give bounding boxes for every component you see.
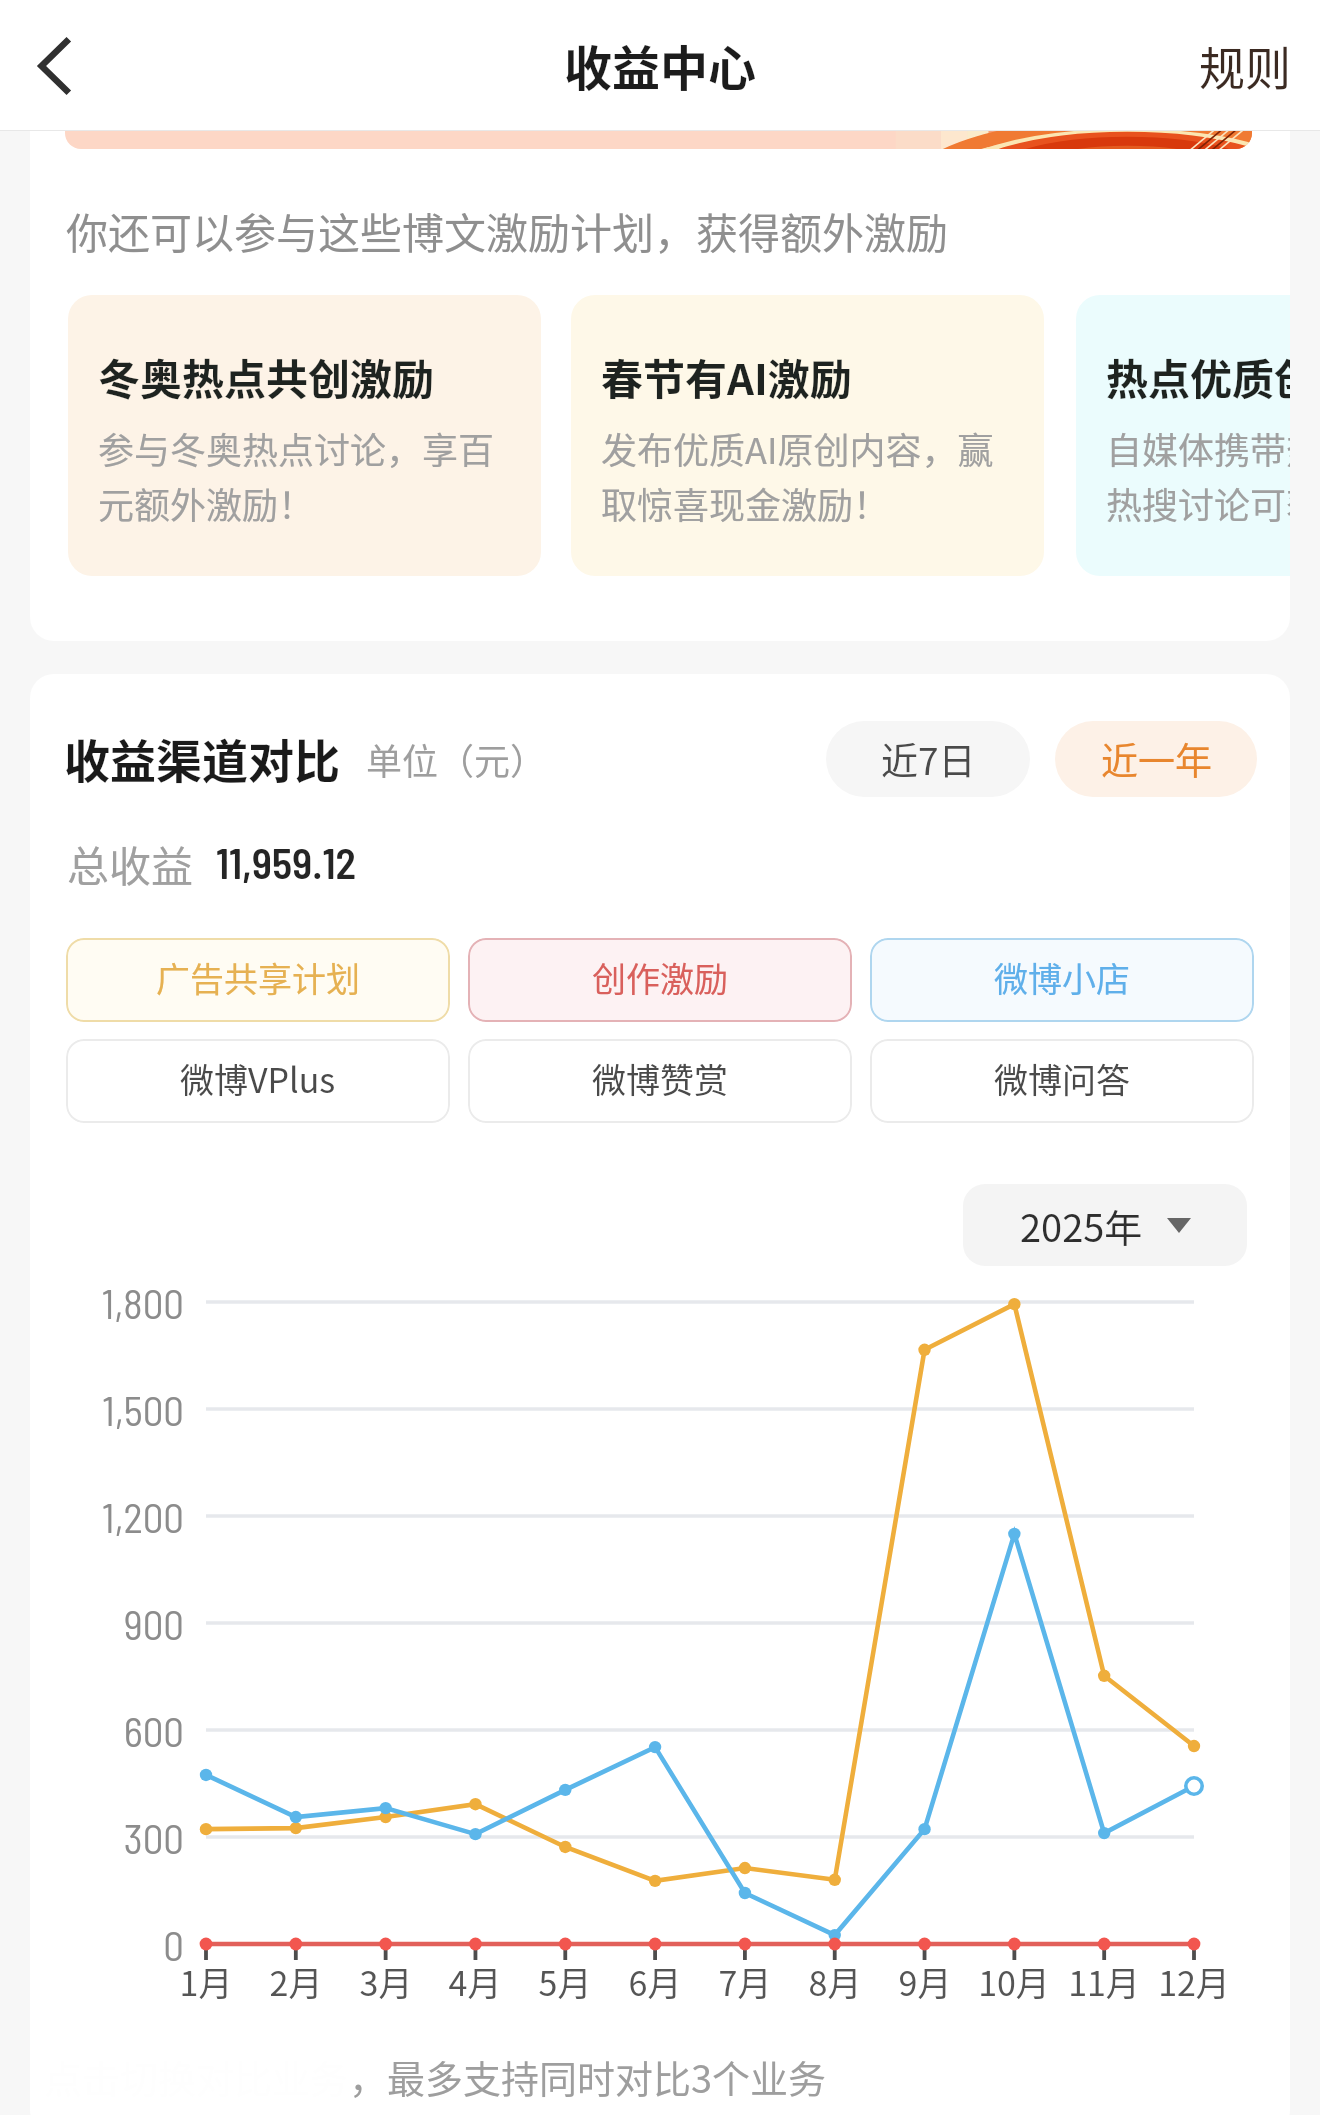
staticText: 300 — [30, 1813, 184, 1862]
staticText: 1月 — [146, 1957, 266, 2006]
staticText: 微博小店 — [994, 953, 1130, 1002]
staticText: 近一年 — [1101, 732, 1212, 786]
staticText: 0 — [30, 1920, 184, 1969]
staticText: 春节有AI激励 — [601, 346, 1044, 407]
button[interactable]: 微博赞赏 — [468, 1039, 852, 1123]
button[interactable]: 热点优质创作激励 — [1076, 295, 1290, 576]
staticText: 冬奥热点共创激励 — [98, 346, 541, 407]
staticText: 微博赞赏 — [592, 1054, 728, 1103]
staticText: 8月 — [775, 1957, 895, 2006]
button[interactable]: 创作激励 — [468, 938, 852, 1022]
staticText: 600 — [30, 1706, 184, 1755]
staticText: 1,800 — [30, 1278, 184, 1327]
staticText: 1,200 — [30, 1492, 184, 1541]
button[interactable]: 广告共享计划 — [66, 938, 450, 1022]
staticText: 参与冬奥热点讨论，享百 元额外激励！ — [98, 422, 541, 529]
staticText: 单位（元） — [366, 733, 547, 785]
button[interactable]: 微博问答 — [870, 1039, 1254, 1123]
staticText: 5月 — [505, 1957, 625, 2006]
button[interactable]: 规则 — [1179, 14, 1311, 117]
staticText: 微博问答 — [994, 1054, 1130, 1103]
staticText: 3月 — [326, 1957, 446, 2006]
staticText: 9月 — [865, 1957, 985, 2006]
button[interactable]: 冬奥热点共创激励 — [68, 295, 541, 576]
button[interactable]: 微博小店 — [870, 938, 1254, 1022]
staticText: ，最多支持同时对比3个业务 — [349, 2049, 827, 2104]
staticText: 6月 — [595, 1957, 715, 2006]
staticText: 近7日 — [881, 732, 976, 786]
button[interactable]: Back — [6, 11, 102, 121]
button[interactable]: 近一年 — [1055, 721, 1257, 797]
staticText: 4月 — [415, 1957, 535, 2006]
staticText: 12月 — [1134, 1957, 1254, 2006]
staticText: 创作激励 — [592, 953, 728, 1002]
staticText: 2月 — [236, 1957, 356, 2006]
button[interactable]: 2025年 — [963, 1184, 1247, 1266]
button[interactable]: 微博VPlus — [66, 1039, 450, 1123]
staticText: 2025年 — [1020, 1198, 1143, 1253]
staticText: 10月 — [954, 1957, 1074, 2006]
button[interactable]: 春节有AI激励 — [571, 295, 1044, 576]
staticText: 总收益 — [67, 833, 194, 894]
button[interactable] — [65, 131, 1252, 149]
staticText: 1,500 — [30, 1385, 184, 1434]
staticText: 7月 — [685, 1957, 805, 2006]
staticText: 热点优质创作激励 — [1106, 346, 1290, 407]
staticText: 规则 — [1199, 32, 1291, 99]
staticText: 自媒体携带热点话题参与 热搜讨论可获得激励 — [1106, 422, 1290, 529]
staticText: 11月 — [1044, 1957, 1164, 2006]
button[interactable]: 近7日 — [826, 721, 1030, 797]
staticText: 收益渠道对比 — [64, 725, 340, 792]
staticText: 900 — [30, 1599, 184, 1648]
staticText: 你还可以参与这些博文激励计划，获得额外激励 — [66, 200, 949, 261]
staticText: 收益中心 — [564, 30, 757, 100]
staticText: 发布优质AI原创内容，赢 取惊喜现金激励！ — [601, 422, 1044, 529]
staticText: 广告共享计划 — [156, 953, 360, 1002]
staticText: 11,959.12 — [216, 837, 357, 887]
staticText: 微博VPlus — [180, 1054, 336, 1103]
